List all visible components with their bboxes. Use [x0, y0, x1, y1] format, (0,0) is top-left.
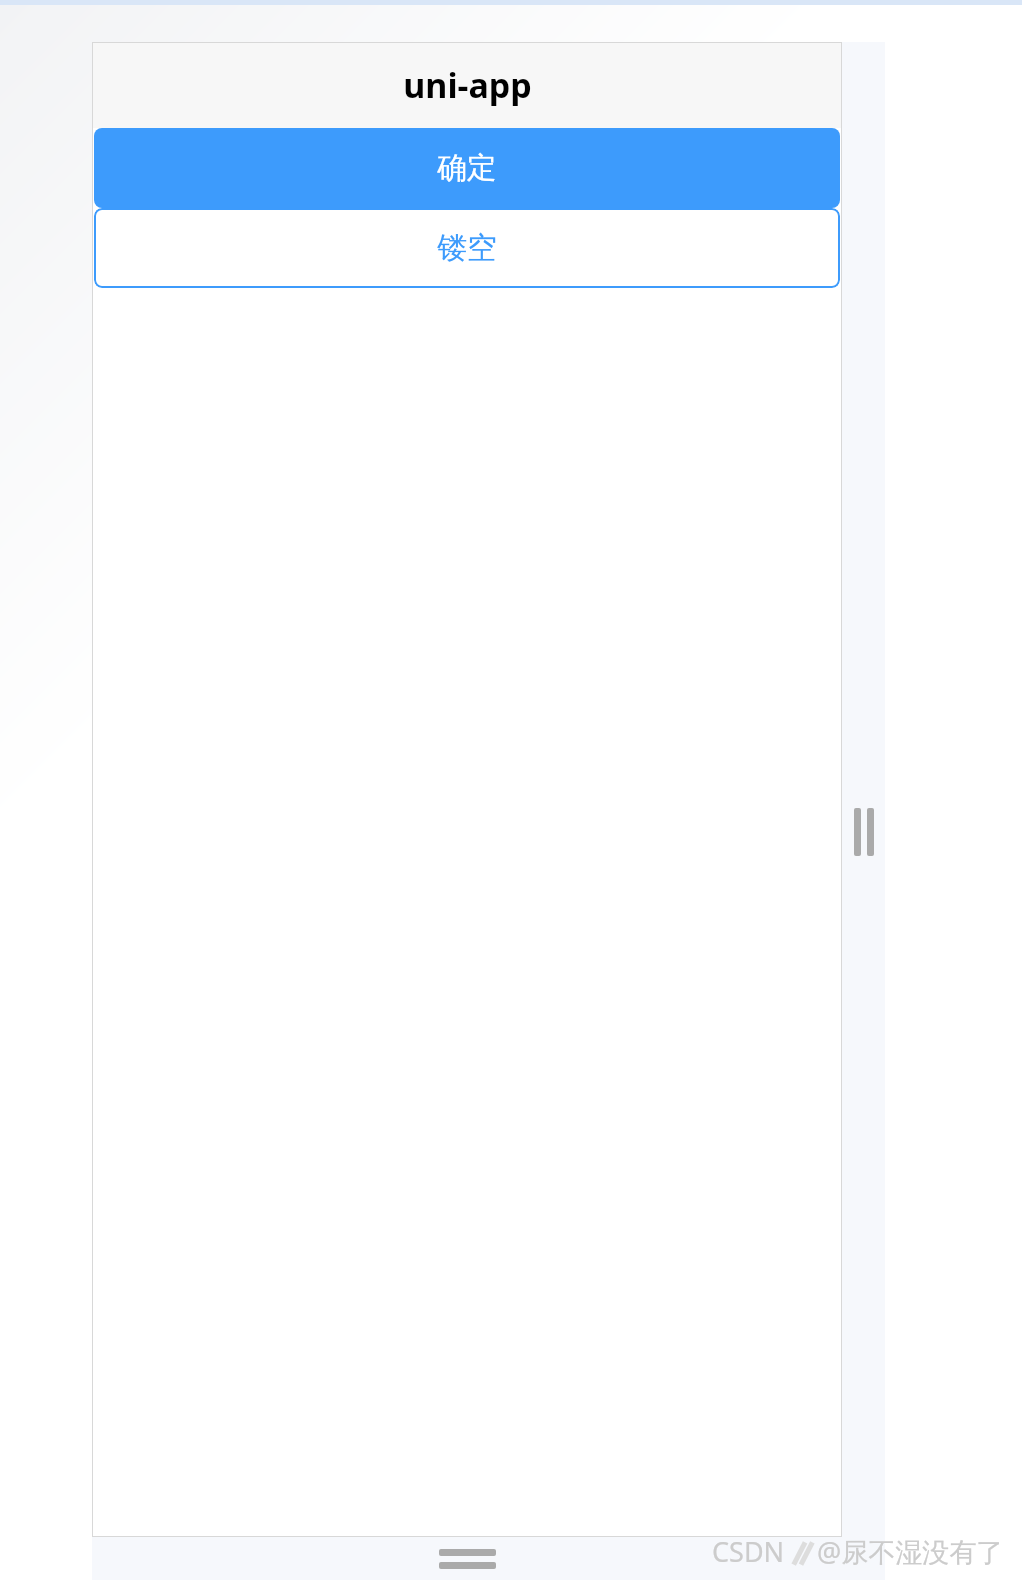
staticText: @尿不湿没有了	[817, 1533, 1004, 1570]
staticText: uni-app	[403, 62, 532, 108]
staticText: 镂空	[437, 229, 497, 267]
button[interactable]: Resize width	[842, 742, 885, 922]
staticText: 确定	[437, 149, 497, 187]
button[interactable]: 镂空	[94, 208, 840, 288]
button[interactable]: Resize height	[372, 1537, 562, 1580]
staticText: CSDN	[712, 1533, 785, 1570]
button[interactable]: 确定	[94, 128, 840, 208]
